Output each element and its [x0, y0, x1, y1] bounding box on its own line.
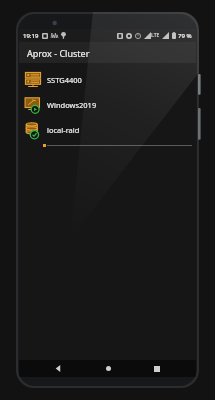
button[interactable]: Home — [97, 360, 119, 377]
staticText: 19:19 — [23, 32, 39, 40]
button[interactable]: SSTG4400 — [19, 67, 196, 92]
staticText: LTE — [151, 32, 160, 39]
staticText: local-raid — [47, 125, 80, 135]
staticText: Windows2019 — [47, 100, 97, 110]
staticText: Aprox - Cluster — [27, 47, 90, 59]
button[interactable]: Recent apps — [146, 360, 168, 377]
staticText: 79 % — [178, 32, 192, 40]
staticText: SSTG4400 — [47, 75, 82, 85]
button[interactable]: Back — [47, 360, 69, 377]
button[interactable]: Windows2019 — [19, 92, 196, 117]
button[interactable]: local-raid — [19, 117, 196, 142]
